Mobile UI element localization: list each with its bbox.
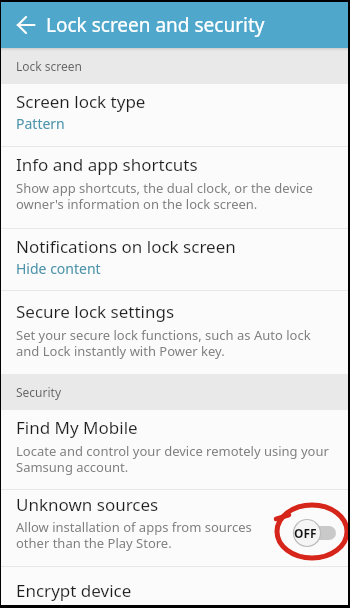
button[interactable]: Encrypt device	[0, 567, 350, 608]
staticText: Unknown sources	[16, 493, 159, 516]
button[interactable]: Find My Mobile	[0, 410, 350, 489]
staticText: Screen lock type	[16, 90, 146, 113]
staticText: Notifications on lock screen	[16, 235, 236, 258]
staticText: Show app shortcuts, the dual clock, or t…	[16, 179, 313, 213]
button[interactable]: Info and app shortcuts	[0, 147, 350, 228]
button[interactable]: Unknown sources	[0, 490, 350, 566]
staticText: Locate and control your device remotely …	[16, 442, 329, 476]
staticText: Security	[16, 384, 62, 400]
staticText: Lock screen	[16, 58, 83, 74]
staticText: Info and app shortcuts	[16, 153, 198, 176]
staticText: Find My Mobile	[16, 416, 138, 439]
staticText: Lock screen and security	[46, 12, 265, 38]
button[interactable]	[0, 2, 46, 48]
staticText: Pattern	[16, 114, 65, 133]
staticText: Allow installation of apps from sources …	[16, 518, 252, 552]
staticText: Set your secure lock functions, such as …	[16, 326, 311, 360]
staticText: Hide content	[16, 259, 101, 278]
button[interactable]: Screen lock type	[0, 84, 350, 146]
button[interactable]: Secure lock settings	[0, 291, 350, 374]
staticText: Encrypt device	[16, 579, 132, 602]
button[interactable]: Notifications on lock screen	[0, 229, 350, 290]
staticText: Secure lock settings	[16, 300, 175, 323]
staticText: OFF	[294, 525, 317, 541]
